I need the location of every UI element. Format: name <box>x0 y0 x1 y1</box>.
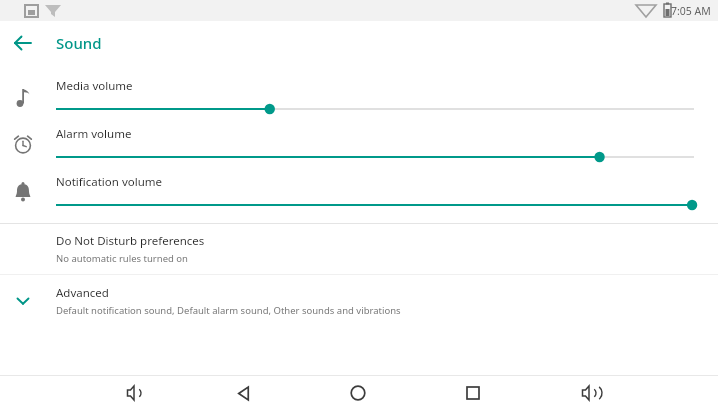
staticText: Default notification sound, Default alar… <box>56 304 401 317</box>
button[interactable]: Do Not Disturb preferences <box>0 224 718 274</box>
staticText: Alarm volume <box>56 126 132 142</box>
staticText: Media volume <box>56 78 133 94</box>
button[interactable]: Media volume <box>0 72 718 120</box>
button[interactable]: Home <box>342 377 374 409</box>
staticText: Notification volume <box>56 174 162 190</box>
staticText: Advanced <box>56 285 109 301</box>
staticText: No automatic rules turned on <box>56 252 188 265</box>
button[interactable]: Volume up <box>572 377 604 409</box>
button[interactable]: Notification volume <box>0 168 718 216</box>
button[interactable]: Volume down <box>117 377 149 409</box>
button[interactable]: Advanced <box>0 275 718 327</box>
button[interactable]: Back <box>227 377 259 409</box>
button[interactable]: Alarm volume <box>0 120 718 168</box>
staticText: 7:05 AM <box>671 4 711 18</box>
staticText: Sound <box>56 33 102 53</box>
button[interactable]: Recent apps <box>457 377 489 409</box>
staticText: Do Not Disturb preferences <box>56 233 205 249</box>
button[interactable]: Back <box>8 28 38 58</box>
